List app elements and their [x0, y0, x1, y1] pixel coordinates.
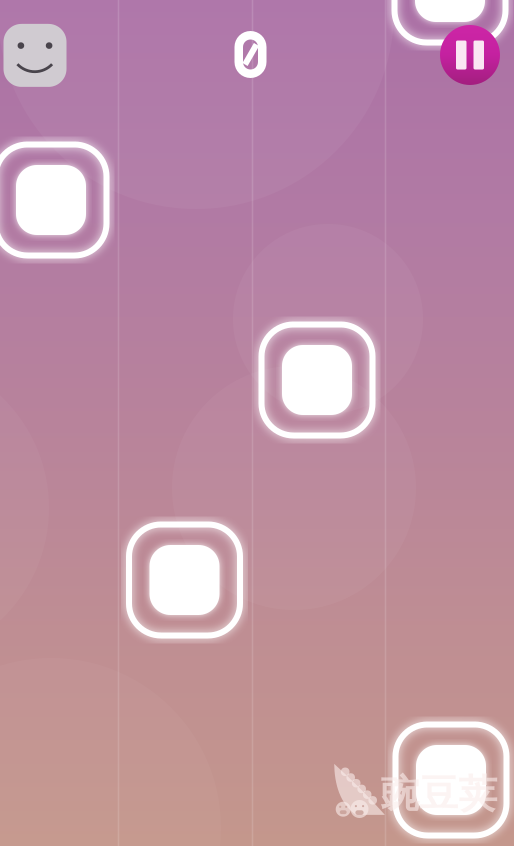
button[interactable]: Pause [227, 393, 287, 453]
button[interactable]: Player profile [225, 391, 288, 454]
staticText: 豌豆荚 [380, 770, 497, 818]
